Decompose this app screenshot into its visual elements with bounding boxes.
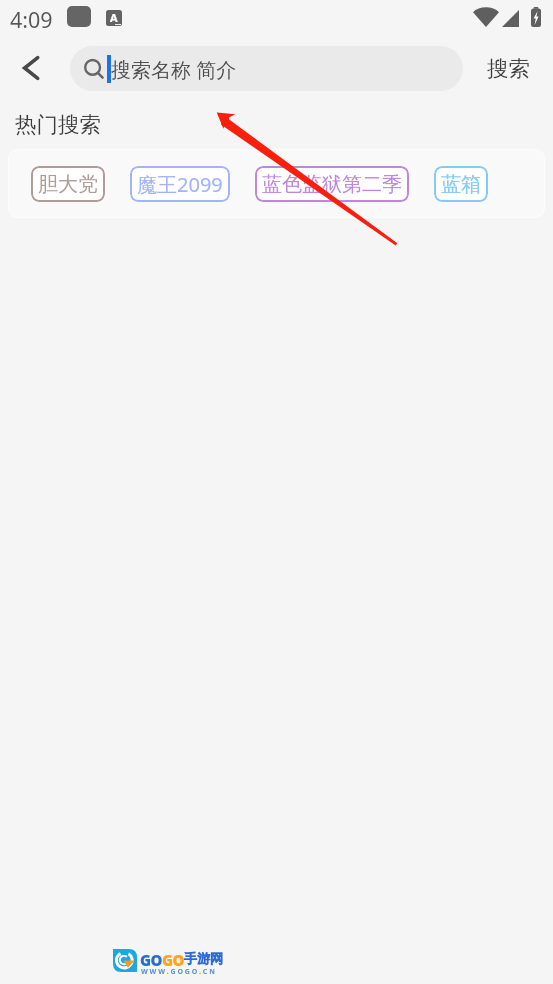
staticText: A	[110, 10, 118, 25]
button[interactable]: 胆大党	[31, 166, 105, 202]
staticText: 搜索名称 简介	[111, 56, 237, 83]
staticText: 手游网	[184, 950, 223, 966]
staticText: 蓝箱	[441, 172, 481, 197]
button[interactable]: 搜索名称 简介	[70, 46, 463, 91]
staticText: GO	[140, 950, 162, 970]
button[interactable]: 搜索	[475, 43, 541, 93]
button[interactable]: Back	[6, 36, 56, 100]
button[interactable]: 魔王2099	[130, 166, 230, 202]
staticText: 搜索	[487, 55, 530, 82]
staticText: 4:09	[10, 5, 53, 34]
button[interactable]: 蓝色监狱第二季	[255, 166, 409, 202]
staticText: W W W . G O G O . C N	[141, 967, 215, 977]
staticText: 蓝色监狱第二季	[262, 172, 402, 197]
staticText: GO	[162, 950, 184, 970]
staticText: 魔王2099	[137, 171, 223, 198]
staticText: 热门搜索	[15, 111, 101, 138]
staticText: 胆大党	[38, 172, 98, 197]
button[interactable]: 蓝箱	[434, 166, 488, 202]
